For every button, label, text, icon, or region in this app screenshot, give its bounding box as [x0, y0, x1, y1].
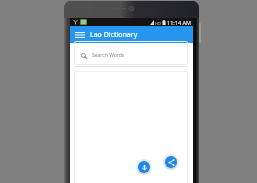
staticText: Lao Dictionary [90, 30, 138, 40]
button[interactable]: Open navigation menu [73, 28, 87, 42]
staticText: HD [155, 21, 161, 26]
button[interactable]: Share [165, 156, 177, 168]
staticText: Search Words [92, 52, 125, 59]
button[interactable]: Voice search [138, 161, 150, 173]
staticText: 11:14 AM [167, 19, 191, 26]
button[interactable]: Search Words [70, 43, 193, 67]
